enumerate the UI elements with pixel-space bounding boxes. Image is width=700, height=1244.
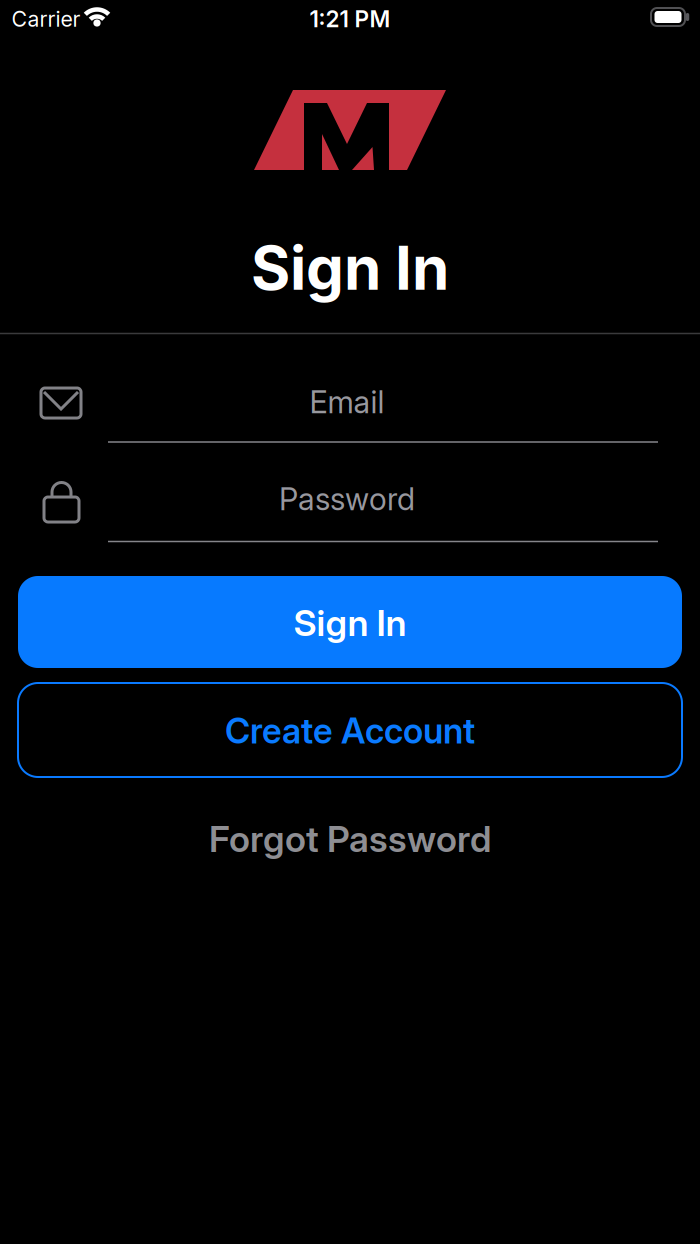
staticText: Create Account — [225, 711, 475, 751]
staticText: Sign In — [251, 233, 449, 303]
staticText: 1:21 PM — [309, 6, 390, 32]
staticText: Password — [279, 481, 415, 517]
staticText: Sign In — [293, 602, 406, 644]
staticText: Forgot Password — [209, 818, 491, 860]
staticText: Email — [309, 384, 384, 420]
staticText: Carrier — [11, 6, 80, 32]
